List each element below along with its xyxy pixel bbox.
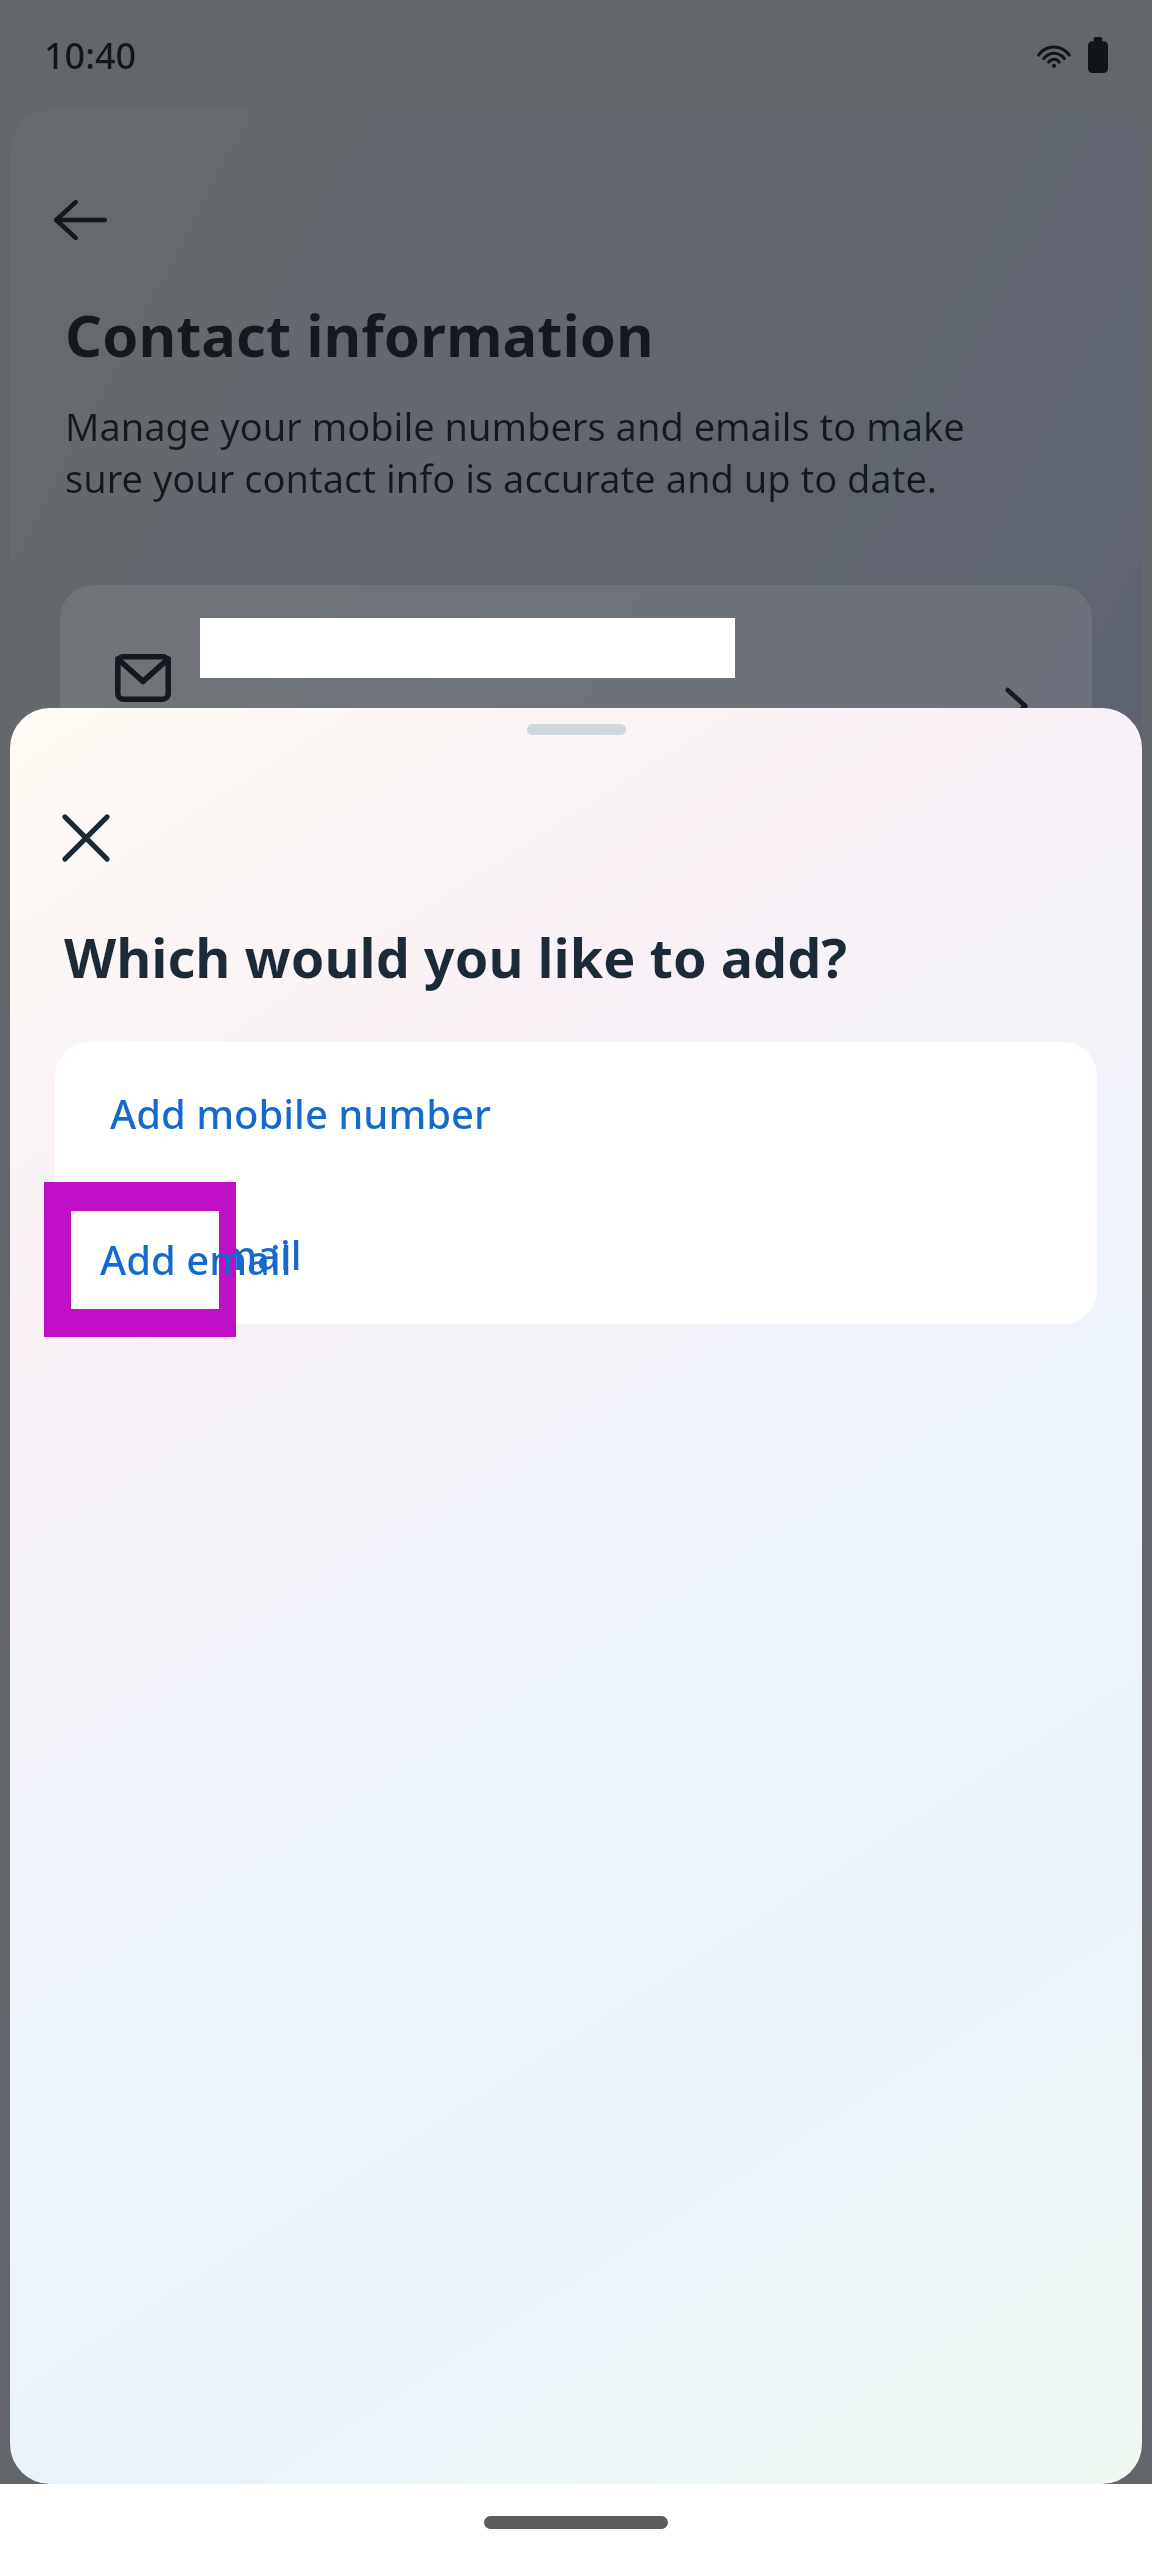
staticText: Add mobile number	[110, 1086, 491, 1140]
staticText: 10:40	[44, 31, 137, 80]
button[interactable]: Close	[40, 792, 132, 884]
staticText: Contact information	[65, 295, 654, 374]
staticText: Add email	[110, 1227, 302, 1281]
staticText: Which would you like to add?	[64, 920, 848, 994]
button[interactable]	[60, 585, 1092, 845]
staticText: Manage your mobile numbers and emails to…	[65, 400, 1045, 504]
button[interactable]: Add email	[55, 1183, 1097, 1324]
button[interactable]: Add mobile number	[55, 1042, 1097, 1183]
button[interactable]: Back	[30, 170, 130, 270]
staticText: Add email	[100, 1232, 292, 1286]
